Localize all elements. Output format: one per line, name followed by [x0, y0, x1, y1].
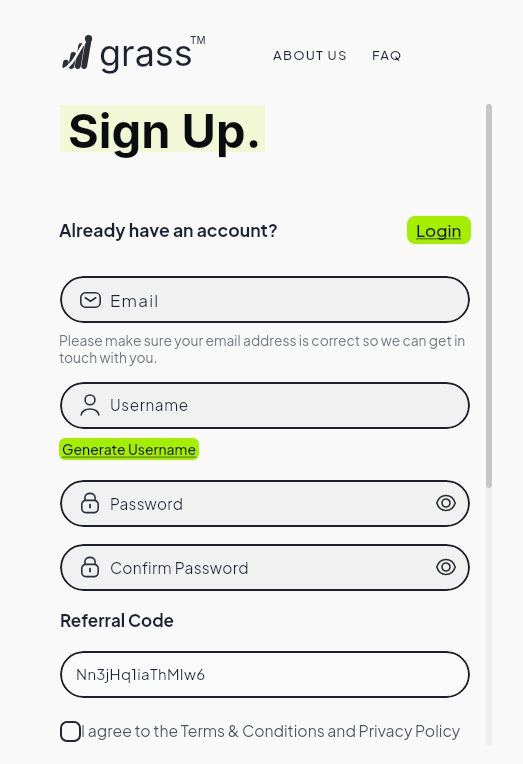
button[interactable]: Generate Username — [59, 438, 199, 460]
button[interactable] — [60, 276, 470, 323]
button[interactable]: Show confirm password — [433, 554, 459, 580]
button[interactable]: Login — [407, 216, 471, 244]
staticText: I agree to the Terms & Conditions and Pr… — [81, 721, 461, 741]
staticText: Username — [110, 395, 189, 414]
button[interactable]: ABOUT US — [265, 40, 356, 70]
button[interactable]: Show password — [433, 490, 459, 516]
staticText: grass — [99, 31, 193, 75]
staticText: Generate Username — [62, 440, 196, 458]
staticText: Login — [416, 219, 462, 240]
staticText: Nn3jHq1iaThMIw6 — [76, 664, 206, 683]
staticText: ABOUT US — [273, 47, 348, 63]
staticText: FAQ — [372, 47, 403, 63]
staticText: Already have an account? — [59, 219, 279, 241]
button[interactable] — [60, 544, 470, 591]
staticText: TM — [190, 34, 206, 46]
button[interactable] — [60, 480, 470, 527]
staticText: Email — [110, 289, 160, 310]
button[interactable] — [56, 716, 472, 748]
button[interactable] — [60, 382, 470, 429]
button[interactable]: FAQ — [364, 40, 411, 70]
staticText: Referral Code — [60, 609, 174, 630]
staticText: Please make sure your email address is c… — [59, 332, 466, 366]
staticText: Confirm Password — [110, 558, 249, 578]
staticText: Sign Up. — [68, 102, 262, 159]
button[interactable] — [60, 651, 470, 698]
staticText: Password — [110, 494, 184, 513]
